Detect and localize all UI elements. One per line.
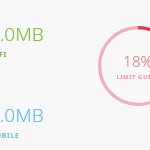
staticText: 18%: [123, 51, 150, 71]
staticText: MOBILE: [0, 131, 20, 141]
staticText: WIFI: [0, 50, 7, 60]
button[interactable]: 10.0MB: [0, 21, 44, 60]
staticText: 11.0MB: [0, 102, 44, 128]
staticText: 10.0MB: [0, 21, 44, 47]
button[interactable]: 11.0MB: [0, 102, 44, 141]
button[interactable]: Data limit guide, 18 percent used: [98, 26, 150, 106]
staticText: LIMIT GUIDE: [116, 73, 150, 81]
